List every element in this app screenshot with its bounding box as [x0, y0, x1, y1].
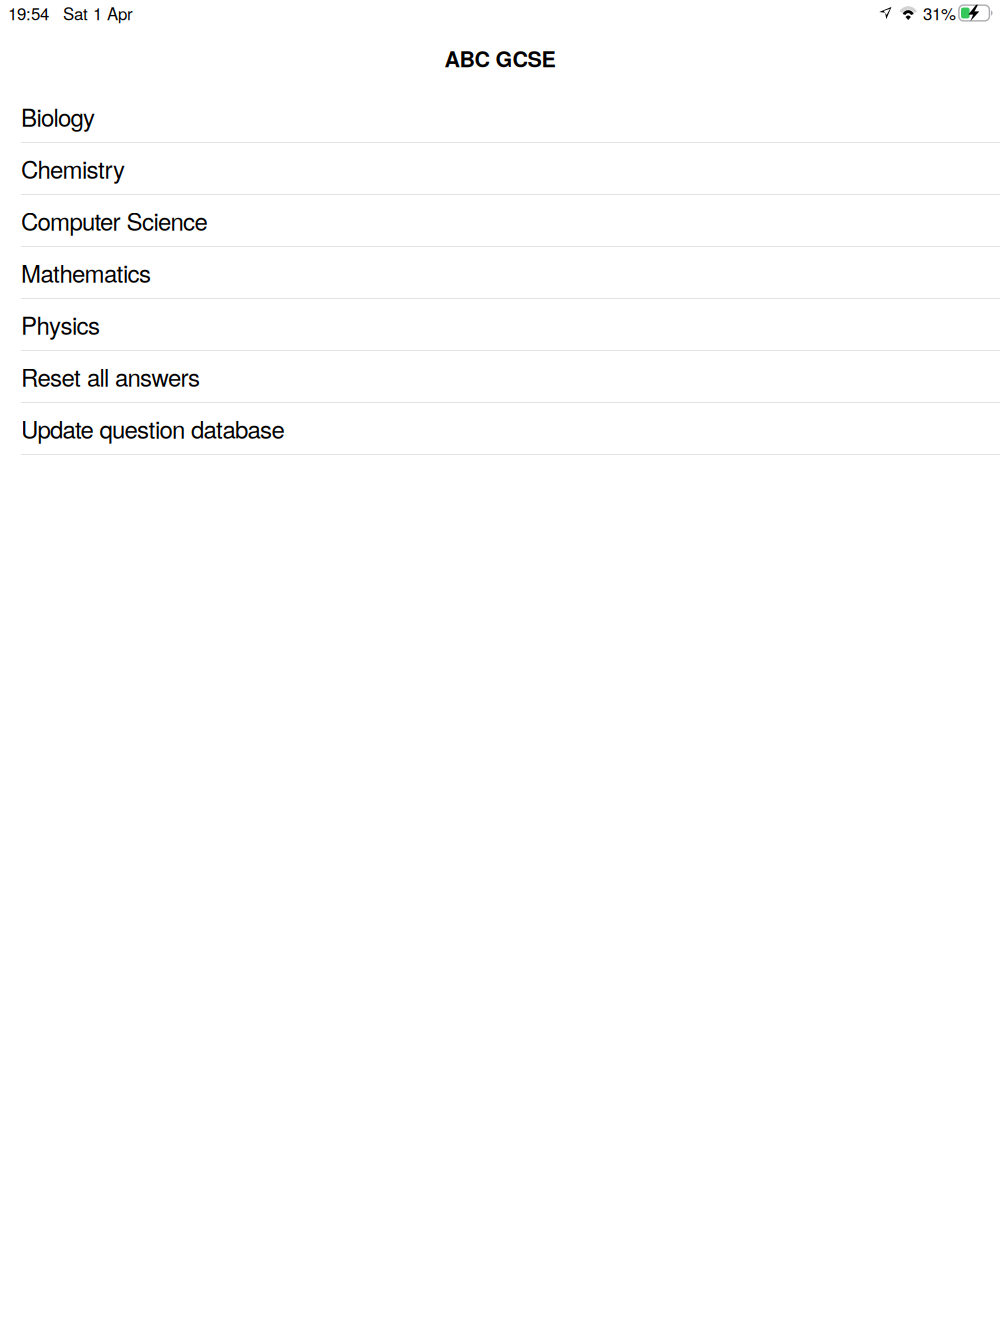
staticText: Chemistry: [21, 151, 125, 186]
button[interactable]: Update question database: [0, 403, 1000, 454]
button[interactable]: Biology: [0, 91, 1000, 142]
staticText: Computer Science: [21, 203, 207, 238]
button[interactable]: Chemistry: [0, 143, 1000, 194]
button[interactable]: Mathematics: [0, 247, 1000, 298]
staticText: Mathematics: [21, 255, 151, 290]
staticText: 19:54: [8, 1, 49, 25]
staticText: Physics: [21, 307, 100, 342]
staticText: ABC GCSE: [444, 43, 555, 74]
staticText: Update question database: [21, 411, 284, 446]
staticText: Reset all answers: [21, 359, 200, 394]
button[interactable]: Reset all answers: [0, 351, 1000, 402]
staticText: 31%: [923, 1, 956, 25]
button[interactable]: Physics: [0, 299, 1000, 350]
staticText: Biology: [21, 99, 95, 134]
button[interactable]: Computer Science: [0, 195, 1000, 246]
staticText: Sat 1 Apr: [63, 1, 133, 25]
